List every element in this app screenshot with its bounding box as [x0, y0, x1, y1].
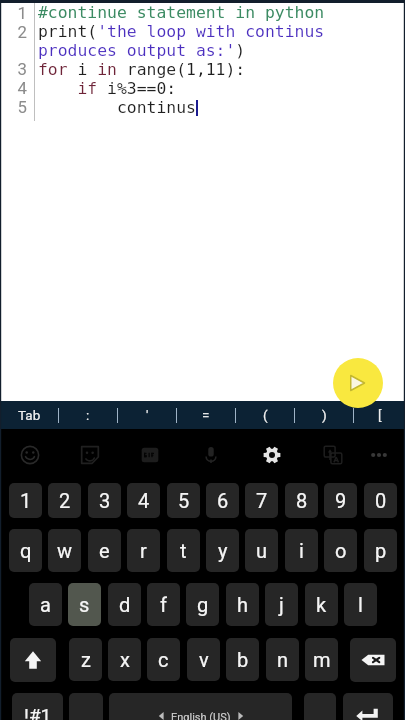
- button[interactable]: [: [354, 401, 405, 429]
- staticText: g: [197, 593, 209, 616]
- button[interactable]: u: [245, 529, 278, 572]
- staticText: :: [86, 407, 90, 423]
- staticText: q: [20, 539, 32, 562]
- button[interactable]: x: [108, 638, 141, 681]
- staticText: n: [277, 648, 289, 671]
- staticText: b: [237, 648, 249, 671]
- button[interactable]: ': [118, 401, 176, 429]
- button[interactable]: j: [265, 583, 298, 626]
- button[interactable]: !#1: [12, 693, 63, 720]
- staticText: i: [299, 539, 304, 562]
- button[interactable]: a: [29, 583, 62, 626]
- button[interactable]: ): [295, 401, 353, 429]
- button[interactable]: w: [48, 529, 81, 572]
- button[interactable]: y: [206, 529, 239, 572]
- button[interactable]: l: [344, 583, 377, 626]
- button[interactable]: f: [147, 583, 180, 626]
- staticText: 2: [59, 489, 71, 512]
- button[interactable]: 8: [285, 483, 318, 518]
- staticText: h: [237, 593, 249, 616]
- button[interactable]: i: [285, 529, 318, 572]
- staticText: continus: [38, 98, 196, 117]
- staticText: 4: [138, 489, 150, 512]
- button[interactable]: m: [305, 638, 338, 681]
- staticText: 2: [0, 22, 27, 42]
- staticText: c: [158, 648, 169, 671]
- button[interactable]: Translate: [317, 439, 349, 471]
- button[interactable]: (: [236, 401, 294, 429]
- button[interactable]: 4: [127, 483, 160, 518]
- button[interactable]: k: [305, 583, 338, 626]
- button[interactable]: Tab: [0, 401, 58, 429]
- button[interactable]: 1: [9, 483, 42, 518]
- button[interactable]: b: [226, 638, 259, 681]
- staticText: d: [119, 593, 131, 616]
- button[interactable]: n: [266, 638, 299, 681]
- button[interactable]: Settings: [256, 439, 288, 471]
- button[interactable]: h: [226, 583, 259, 626]
- button[interactable]: Emoji: [14, 439, 46, 471]
- button[interactable]: e: [88, 529, 121, 572]
- staticText: English (US): [171, 711, 231, 720]
- staticText: f: [160, 593, 167, 616]
- staticText: 6: [217, 489, 229, 512]
- staticText: =: [202, 407, 210, 423]
- staticText: o: [335, 539, 347, 562]
- button[interactable]: p: [364, 529, 397, 572]
- button[interactable]: r: [127, 529, 160, 572]
- staticText: 3: [99, 489, 111, 512]
- button[interactable]: Shift: [10, 638, 56, 682]
- staticText: ): [322, 407, 327, 423]
- button[interactable]: =: [177, 401, 235, 429]
- button[interactable]: v: [187, 638, 220, 681]
- button[interactable]: t: [167, 529, 200, 572]
- button[interactable]: 6: [206, 483, 239, 518]
- staticText: 4: [0, 78, 27, 97]
- staticText: (: [263, 407, 268, 423]
- button[interactable]: GIF: [134, 439, 166, 471]
- staticText: p: [375, 539, 387, 562]
- staticText: if i%3==0:: [38, 79, 177, 98]
- staticText: 5: [0, 97, 27, 116]
- button[interactable]: Space: [109, 693, 292, 720]
- staticText: 7: [256, 489, 268, 512]
- button[interactable]: 7: [245, 483, 278, 518]
- button[interactable]: q: [9, 529, 42, 572]
- button[interactable]: 0: [364, 483, 397, 518]
- button[interactable]: Stickers: [74, 439, 106, 471]
- staticText: 0: [375, 489, 387, 512]
- staticText: 1: [20, 489, 32, 512]
- button[interactable]: More: [363, 439, 395, 471]
- button[interactable]: Voice input: [195, 439, 227, 471]
- button[interactable]: g: [186, 583, 219, 626]
- button[interactable]: Run: [333, 358, 383, 408]
- staticText: 1: [0, 3, 27, 22]
- staticText: produces output as:'): [38, 41, 246, 60]
- staticText: j: [279, 593, 284, 616]
- button[interactable]: 5: [167, 483, 200, 518]
- button[interactable]: Period: [304, 693, 336, 720]
- button[interactable]: 9: [324, 483, 357, 518]
- staticText: !#1: [24, 704, 52, 720]
- staticText: for i in range(1,11):: [38, 60, 246, 79]
- button[interactable]: 2: [48, 483, 81, 518]
- staticText: r: [140, 539, 147, 562]
- button[interactable]: c: [147, 638, 180, 681]
- button[interactable]: Enter: [343, 693, 393, 720]
- button[interactable]: Backspace: [350, 638, 396, 682]
- button[interactable]: o: [324, 529, 357, 572]
- button[interactable]: :: [59, 401, 117, 429]
- button[interactable]: Symbols: [69, 693, 103, 720]
- staticText: x: [120, 648, 130, 671]
- button[interactable]: 3: [88, 483, 121, 518]
- button[interactable]: z: [69, 638, 102, 681]
- staticText: k: [316, 593, 327, 616]
- staticText: z: [81, 648, 91, 671]
- staticText: #continue statement in python: [38, 3, 325, 22]
- staticText: l: [358, 593, 363, 616]
- button[interactable]: s: [68, 583, 101, 626]
- staticText: y: [218, 539, 228, 562]
- button[interactable]: d: [108, 583, 141, 626]
- staticText: m: [313, 648, 331, 671]
- staticText: u: [256, 539, 268, 562]
